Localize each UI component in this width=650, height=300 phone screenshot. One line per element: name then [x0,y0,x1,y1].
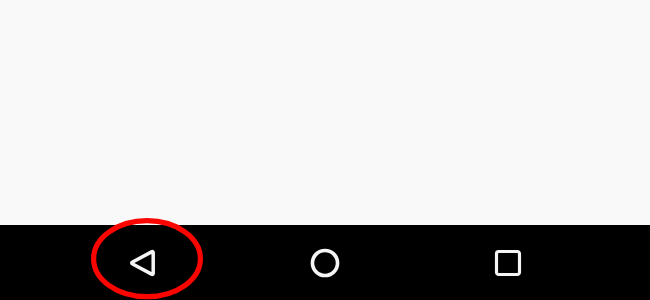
button[interactable]: Recent apps [466,221,550,300]
button[interactable]: Back [100,221,184,300]
button[interactable]: Home [283,221,367,300]
